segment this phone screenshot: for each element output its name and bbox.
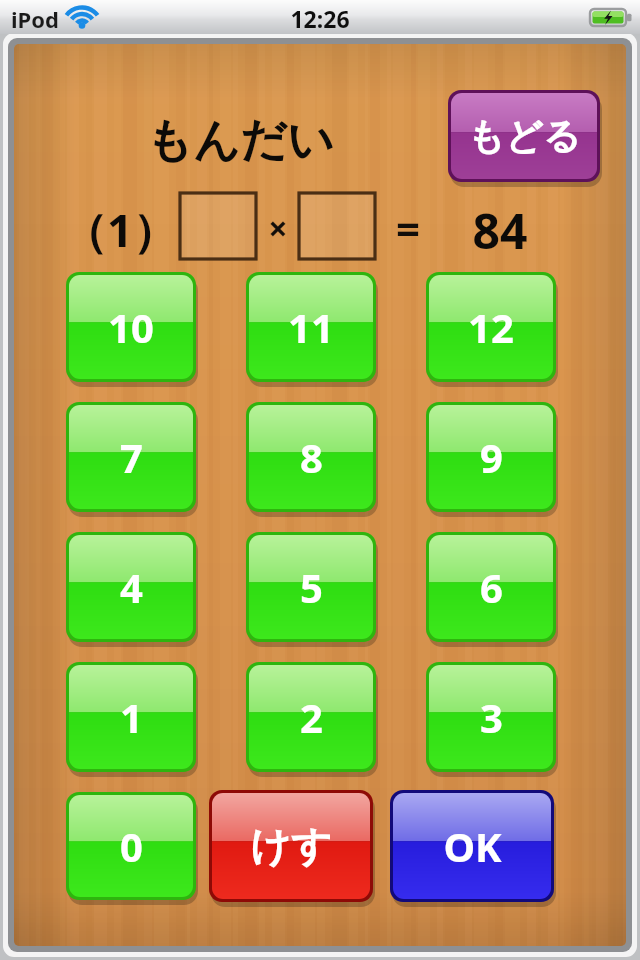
staticText: 8 [300,430,323,484]
staticText: けす [250,821,332,871]
button[interactable]: 8 [246,402,376,512]
staticText: もんだい [140,112,340,172]
staticText: 2 [300,690,323,744]
button[interactable]: 2 [246,662,376,772]
button[interactable]: OK [390,790,554,902]
staticText: iPod [11,4,59,34]
button[interactable]: 3 [426,662,556,772]
button[interactable]: 6 [426,532,556,642]
staticText: 84 [455,198,545,258]
staticText: 9 [480,430,503,484]
button[interactable]: Back [448,90,600,182]
staticText: 11 [288,300,334,354]
button[interactable]: 4 [66,532,196,642]
staticText: 0 [120,819,143,873]
staticText: 3 [480,690,503,744]
staticText: 1 [120,690,143,744]
button[interactable]: 0 [66,792,196,900]
button[interactable]: 5 [246,532,376,642]
staticText: （1） [62,199,178,260]
button[interactable]: 7 [66,402,196,512]
staticText: 10 [108,300,154,354]
staticText: 12 [468,300,514,354]
staticText: 6 [480,560,503,614]
staticText: = [388,199,428,257]
button[interactable]: Clear [209,790,373,902]
staticText: 12:26 [268,3,372,33]
staticText: OK [443,819,502,873]
button[interactable]: 10 [66,272,196,382]
staticText: × [262,205,294,255]
staticText: 5 [300,560,323,614]
button[interactable]: 11 [246,272,376,382]
staticText: もどる [467,113,581,160]
button[interactable]: 12 [426,272,556,382]
staticText: 7 [120,430,143,484]
staticText: 4 [120,560,143,614]
button[interactable]: 9 [426,402,556,512]
button[interactable]: 1 [66,662,196,772]
